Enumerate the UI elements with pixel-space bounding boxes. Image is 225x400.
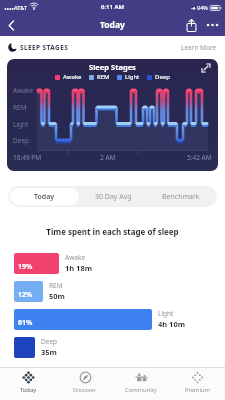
staticText: Deep [41, 337, 58, 346]
staticText: Sleep Stages [89, 62, 136, 72]
staticText: Benchmark [162, 192, 200, 202]
staticText: 5:42 AM [187, 153, 212, 162]
button[interactable]: Learn More [181, 43, 217, 52]
staticText: Community [125, 386, 157, 394]
staticText: Deep [155, 73, 170, 81]
staticText: Light [125, 73, 140, 81]
staticText: 1h 18m [65, 263, 93, 273]
staticText: REM [49, 281, 63, 290]
button[interactable] [201, 14, 225, 36]
staticText: Light [13, 120, 29, 129]
staticText: 19% [18, 262, 33, 272]
button[interactable]: 30 Day Avg [79, 188, 147, 205]
staticText: 4h 10m [158, 319, 186, 329]
staticText: Light [158, 309, 174, 318]
staticText: 12% [18, 290, 33, 300]
button[interactable]: Today [0, 368, 57, 400]
staticText: 2 AM [100, 153, 116, 162]
staticText: SLEEP STAGES [20, 43, 69, 52]
staticText: Deep [13, 136, 30, 145]
staticText: 50m [49, 291, 65, 301]
staticText: 6:11 AM [101, 3, 125, 11]
button[interactable] [0, 14, 22, 36]
staticText: Today [34, 192, 55, 202]
staticText: Awake [13, 86, 34, 95]
staticText: Learn More [181, 43, 217, 52]
staticText: Premium [185, 386, 210, 394]
staticText: 30 Day Avg [95, 192, 132, 202]
staticText: Discover [73, 386, 97, 394]
staticText: Today [20, 386, 37, 394]
staticText: Today [100, 19, 125, 31]
staticText: Awake [63, 73, 82, 81]
staticText: 61% [18, 318, 33, 328]
button[interactable]: Discover [57, 368, 113, 400]
button[interactable]: Premium [169, 368, 225, 400]
button[interactable]: Benchmark [147, 188, 215, 205]
button[interactable] [181, 15, 201, 35]
staticText: Awake [65, 253, 86, 262]
staticText: REM [97, 73, 110, 81]
staticText: AT&T [14, 4, 28, 11]
staticText: REM [13, 103, 27, 112]
button[interactable] [200, 62, 212, 74]
staticText: ➔ 94% [191, 4, 208, 11]
button[interactable]: Community [113, 368, 169, 400]
staticText: 10:49 PM [13, 153, 42, 162]
staticText: 35m [41, 347, 57, 357]
staticText: Time spent in each stage of sleep [0, 226, 225, 237]
button[interactable]: Today [10, 188, 79, 205]
